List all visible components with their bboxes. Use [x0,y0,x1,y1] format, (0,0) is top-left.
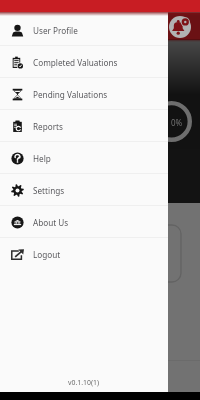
button[interactable]: Help [0,142,168,174]
button[interactable]: Logout [0,238,168,270]
staticText: User Profile [33,25,78,36]
staticText: Completed Valuations [33,57,118,68]
staticText: Logout [33,249,61,260]
button[interactable]: Reports [0,110,168,142]
staticText: v0.1.10(1) [68,378,100,387]
staticText: Pending Valuations [33,89,108,100]
staticText: 0% [171,117,183,128]
staticText: About Us [33,217,69,228]
button[interactable]: About Us [0,206,168,238]
staticText: Settings [33,185,65,196]
button[interactable]: Notifications [169,16,191,38]
staticText: Help [33,153,51,164]
button[interactable]: User Profile [0,14,168,46]
button[interactable]: Completed Valuations [0,46,168,78]
button[interactable]: Pending Valuations [0,78,168,110]
staticText: Reports [33,121,63,132]
button[interactable]: Settings [0,174,168,206]
